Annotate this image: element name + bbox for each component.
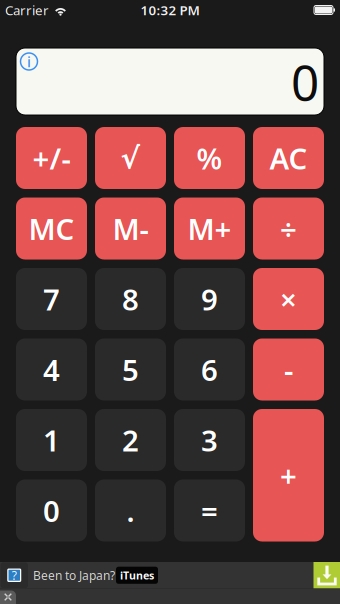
staticText: × bbox=[280, 279, 297, 318]
staticText: 8 bbox=[122, 279, 139, 318]
button[interactable]: M- bbox=[95, 197, 166, 259]
button[interactable]: + bbox=[253, 409, 324, 541]
staticText: Carrier bbox=[5, 1, 49, 19]
button[interactable]: 5 bbox=[95, 338, 166, 400]
button[interactable]: 0 bbox=[16, 479, 87, 541]
button[interactable]: 4 bbox=[16, 338, 87, 400]
staticText: 5 bbox=[122, 350, 139, 389]
button[interactable]: Info bbox=[18, 50, 40, 72]
staticText: . bbox=[126, 491, 134, 530]
staticText: ÷ bbox=[280, 209, 297, 248]
staticText: 10:32 PM bbox=[140, 1, 199, 19]
staticText: 1 bbox=[43, 420, 60, 459]
staticText: i bbox=[27, 52, 31, 71]
staticText: AC bbox=[269, 138, 307, 177]
staticText: 7 bbox=[43, 279, 60, 318]
staticText: 4 bbox=[43, 350, 60, 389]
button[interactable]: % bbox=[174, 127, 245, 189]
button[interactable]: 6 bbox=[174, 338, 245, 400]
staticText: + bbox=[280, 456, 297, 495]
button[interactable]: 1 bbox=[16, 409, 87, 471]
button[interactable]: 9 bbox=[174, 268, 245, 330]
staticText: - bbox=[284, 350, 293, 389]
button[interactable]: 2 bbox=[95, 409, 166, 471]
staticText: ? bbox=[12, 567, 17, 583]
button[interactable]: × bbox=[253, 268, 324, 330]
button[interactable]: MC bbox=[16, 197, 87, 259]
staticText: 6 bbox=[201, 350, 218, 389]
button[interactable]: . bbox=[95, 479, 166, 541]
button[interactable]: 7 bbox=[16, 268, 87, 330]
staticText: +/- bbox=[32, 138, 70, 177]
button[interactable]: AC bbox=[253, 127, 324, 189]
staticText: % bbox=[196, 138, 222, 177]
staticText: 3 bbox=[201, 420, 218, 459]
staticText: MC bbox=[28, 209, 74, 248]
button[interactable]: 8 bbox=[95, 268, 166, 330]
staticText: 9 bbox=[201, 279, 218, 318]
button[interactable]: - bbox=[253, 338, 324, 400]
button[interactable]: M+ bbox=[174, 197, 245, 259]
staticText: iTunes bbox=[120, 568, 154, 582]
button[interactable]: √ bbox=[95, 127, 166, 189]
staticText: M+ bbox=[187, 209, 231, 248]
button[interactable]: 3 bbox=[174, 409, 245, 471]
staticText: 2 bbox=[122, 420, 139, 459]
staticText: = bbox=[201, 491, 218, 530]
button[interactable]: +/- bbox=[16, 127, 87, 189]
staticText: 0 bbox=[43, 491, 60, 530]
staticText: √ bbox=[120, 141, 140, 175]
button[interactable]: Close ad bbox=[0, 586, 21, 604]
staticText: M- bbox=[112, 209, 148, 248]
button[interactable]: Download bbox=[313, 562, 340, 588]
staticText: 0 bbox=[291, 49, 319, 114]
button[interactable]: ÷ bbox=[253, 197, 324, 259]
button[interactable]: = bbox=[174, 479, 245, 541]
staticText: Been to Japan? bbox=[33, 567, 115, 583]
